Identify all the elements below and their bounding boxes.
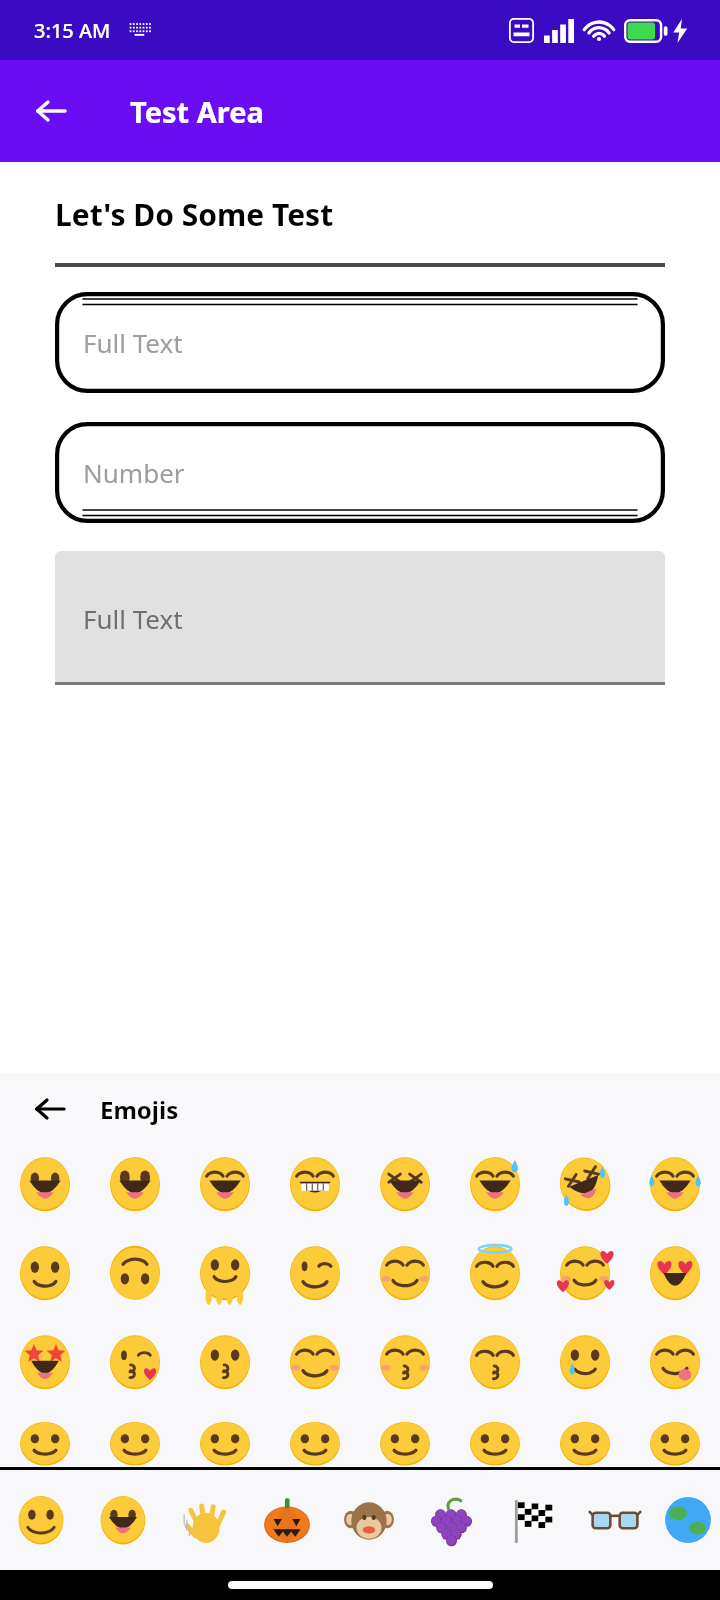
button[interactable]: Number [55,422,665,523]
button[interactable]: Emoji 21 [360,1331,450,1393]
button[interactable]: Emoji 7 [540,1153,630,1215]
button[interactable]: Emoji category 6 [410,1470,492,1570]
staticText: 3:15 AM [34,17,111,44]
button[interactable]: Emoji category 3 [164,1470,246,1570]
button[interactable]: Emoji 16 [630,1242,720,1304]
button[interactable]: Emoji 22 [450,1331,540,1393]
button[interactable]: Emoji 6 [450,1153,540,1215]
button[interactable]: Emoji 1 [0,1153,90,1215]
button[interactable]: Emoji 2 [90,1153,180,1215]
button[interactable]: Emoji 18 [90,1331,180,1393]
button[interactable]: Emoji category 9 [656,1470,720,1570]
button[interactable]: Emoji 15 [540,1242,630,1304]
button[interactable]: Emoji category 5 [328,1470,410,1570]
button[interactable]: Emoji 32 [630,1420,720,1467]
button[interactable]: Emoji 20 [270,1331,360,1393]
button[interactable]: Emoji 14 [450,1242,540,1304]
button[interactable]: Emoji 30 [450,1420,540,1467]
button[interactable]: Back [20,80,82,142]
button[interactable]: Emoji 13 [360,1242,450,1304]
button[interactable]: Emoji 27 [180,1420,270,1467]
button[interactable]: Emoji 19 [180,1331,270,1393]
button[interactable]: Emoji 28 [270,1420,360,1467]
button[interactable]: Emoji category 1 [0,1470,82,1570]
button[interactable]: Emoji 4 [270,1153,360,1215]
button[interactable]: Emoji 8 [630,1153,720,1215]
button[interactable]: Emoji 26 [90,1420,180,1467]
button[interactable]: Emoji 3 [180,1153,270,1215]
button[interactable]: Emoji 31 [540,1420,630,1467]
button[interactable]: Emoji 11 [180,1242,270,1304]
button[interactable]: Emoji category 7 [492,1470,574,1570]
button[interactable]: Full Text [55,292,665,393]
button[interactable]: Full Text [55,551,665,685]
button[interactable]: Emoji 12 [270,1242,360,1304]
button[interactable]: Emoji 29 [360,1420,450,1467]
staticText: Full Text [83,325,183,360]
button[interactable]: Emoji 24 [630,1331,720,1393]
button[interactable]: Emoji category 2 [82,1470,164,1570]
staticText: Emojis [100,1093,179,1126]
button[interactable]: Back [22,1081,78,1137]
button[interactable]: Emoji 23 [540,1331,630,1393]
button[interactable]: Emoji category 4 [246,1470,328,1570]
button[interactable]: Emoji 9 [0,1242,90,1304]
staticText: Let's Do Some Test [55,194,334,235]
button[interactable]: Emoji category 8 [574,1470,656,1570]
button[interactable]: Emoji 25 [0,1420,90,1467]
button[interactable]: Emoji 5 [360,1153,450,1215]
button[interactable]: Emoji 17 [0,1331,90,1393]
staticText: Number [83,455,185,490]
staticText: Full Text [83,601,183,636]
button[interactable]: Emoji 10 [90,1242,180,1304]
staticText: Test Area [130,92,264,131]
